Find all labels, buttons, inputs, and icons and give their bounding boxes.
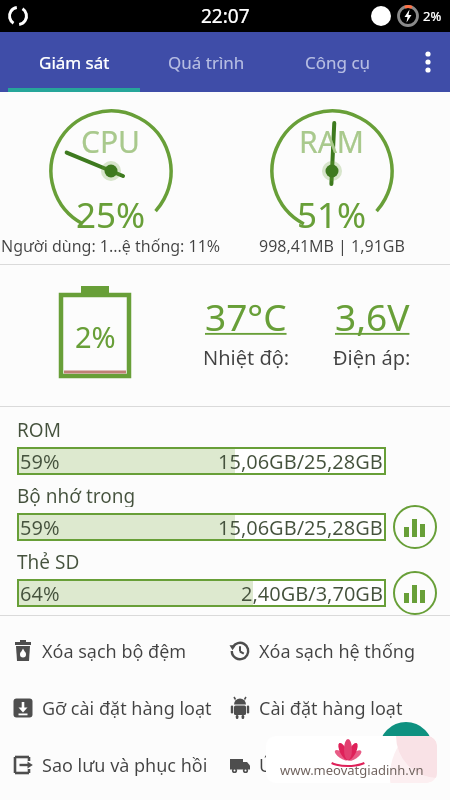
staticText: Ứng dụng hệ thống: [259, 753, 426, 778]
staticText: 51%: [297, 191, 367, 231]
button[interactable]: Công cụ: [272, 32, 404, 92]
button[interactable]: Cài đặt hàng loạt: [228, 694, 445, 722]
staticText: Điện áp:: [333, 344, 411, 371]
staticText: Người dùng: 1...ệ thống: 11%: [1, 235, 221, 257]
button[interactable]: Xóa sạch bộ đệm: [11, 637, 228, 665]
staticText: 2%: [75, 317, 116, 356]
button[interactable]: Quá trình: [140, 32, 272, 92]
staticText: 59%: [20, 514, 60, 541]
staticText: 998,41MB | 1,91GB: [259, 235, 405, 257]
button[interactable]: [393, 505, 437, 549]
staticText: Công cụ: [305, 51, 371, 74]
staticText: 59%: [20, 448, 60, 475]
staticText: 22:07: [201, 3, 250, 29]
staticText: Cài đặt hàng loạt: [259, 696, 403, 721]
staticText: 3,6V: [335, 291, 410, 341]
staticText: 25%: [76, 191, 146, 231]
staticText: Nhiệt độ:: [203, 344, 290, 371]
staticText: Quá trình: [168, 51, 245, 74]
button[interactable]: Xóa sạch hệ thống: [228, 637, 445, 665]
staticText: Giám sát: [39, 51, 110, 74]
staticText: 2%: [423, 7, 442, 25]
staticText: 15,06GB/25,28GB: [218, 514, 383, 541]
staticText: Xóa sạch bộ đệm: [42, 639, 187, 664]
button[interactable]: Gỡ cài đặt hàng loạt: [11, 694, 228, 722]
staticText: Xóa sạch hệ thống: [259, 639, 416, 664]
staticText: CPU: [81, 121, 141, 162]
staticText: Thẻ SD: [17, 549, 80, 573]
button[interactable]: Ứng dụng hệ thống: [228, 751, 445, 779]
staticText: 37°C: [205, 291, 287, 341]
staticText: ROM: [17, 417, 61, 441]
button[interactable]: [379, 722, 433, 776]
staticText: Bộ nhớ trong: [17, 483, 136, 507]
staticText: www.meovatgiadinh.vn: [280, 761, 424, 779]
staticText: Sao lưu và phục hồi: [42, 753, 208, 778]
staticText: 15,06GB/25,28GB: [218, 448, 383, 475]
staticText: RAM: [299, 121, 365, 162]
staticText: 2,40GB/3,70GB: [241, 580, 383, 607]
button[interactable]: Giám sát: [8, 32, 140, 92]
button[interactable]: [393, 571, 437, 615]
staticText: Gỡ cài đặt hàng loạt: [42, 696, 212, 721]
button[interactable]: Sao lưu và phục hồi: [11, 751, 228, 779]
button[interactable]: [406, 40, 450, 84]
staticText: 64%: [20, 580, 60, 607]
